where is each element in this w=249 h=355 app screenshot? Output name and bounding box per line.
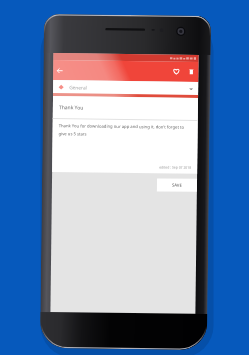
button[interactable]: General (53, 80, 198, 96)
button[interactable]: Delete (184, 62, 198, 82)
staticText: General (69, 84, 87, 91)
button[interactable]: Back (53, 60, 65, 80)
button[interactable]: SAVE (157, 178, 197, 192)
staticText: SAVE (172, 183, 182, 189)
staticText: Thank You (59, 104, 84, 111)
staticText: Thank You for downloading our app and us… (59, 123, 195, 138)
staticText: edited : Sep 07 2018 (159, 164, 192, 170)
button[interactable]: Favorite (167, 61, 184, 82)
